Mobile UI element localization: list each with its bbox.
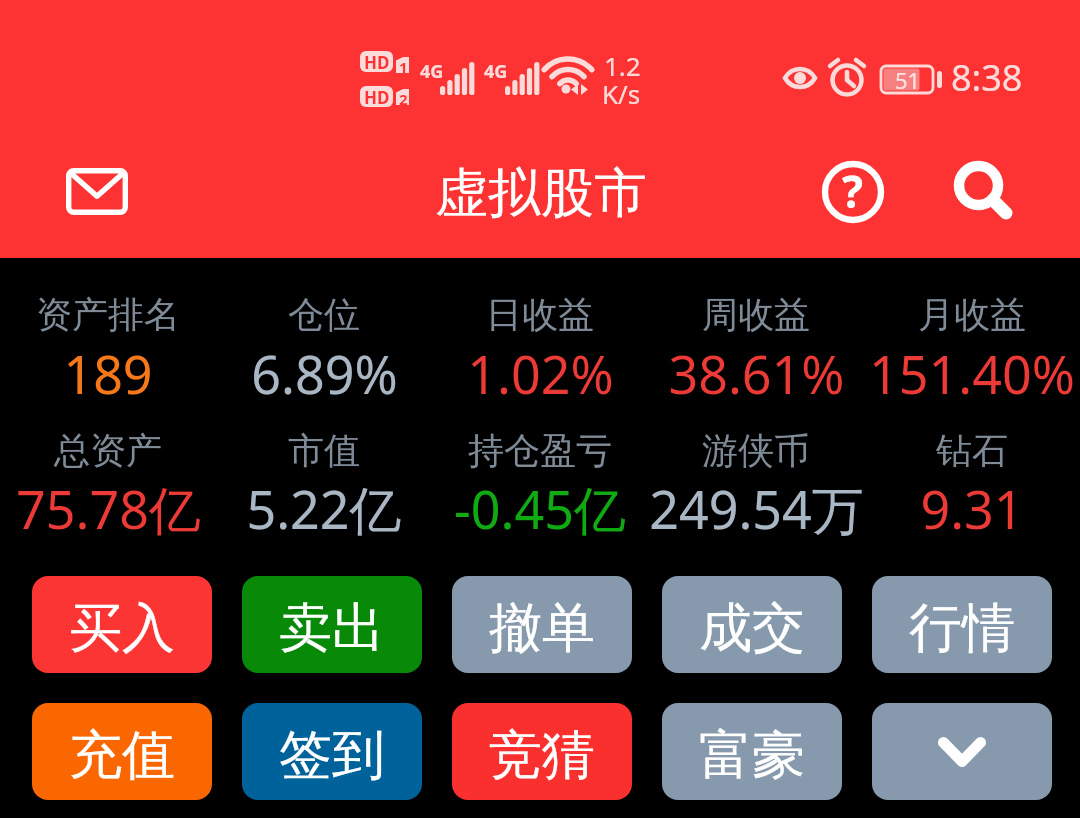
staticText: 资产排名	[36, 292, 180, 337]
button[interactable]: 市值	[216, 428, 432, 544]
staticText: 市值	[288, 428, 360, 473]
staticText: 8:38	[951, 53, 1023, 102]
button[interactable]: 撤单	[452, 576, 632, 673]
staticText: 虚拟股市	[435, 160, 647, 227]
staticText: 189	[63, 338, 153, 409]
button[interactable]: 充值	[32, 703, 212, 800]
staticText: 1	[399, 57, 408, 73]
button[interactable]: 富豪	[662, 703, 842, 800]
staticText: 游侠币	[702, 428, 810, 473]
staticText: 竞猜	[489, 722, 595, 789]
staticText: 仓位	[288, 292, 360, 337]
button[interactable]: 周收益	[648, 292, 864, 409]
staticText: 75.78亿	[16, 473, 201, 544]
button[interactable]: 游侠币	[648, 428, 864, 544]
button[interactable]: Messages	[36, 151, 158, 231]
button[interactable]: 钻石	[864, 428, 1080, 544]
staticText: 日收益	[486, 292, 594, 337]
button[interactable]: Search	[930, 134, 1022, 226]
staticText: 151.40%	[869, 338, 1075, 409]
staticText: 行情	[909, 595, 1015, 662]
staticText: HD	[364, 51, 390, 72]
staticText: 1.02%	[467, 338, 614, 409]
staticText: 249.54万	[649, 473, 864, 544]
staticText: 9.31	[920, 473, 1024, 544]
staticText: 4G	[484, 59, 508, 84]
button[interactable]: 仓位	[216, 292, 432, 409]
staticText: 6.89%	[251, 338, 398, 409]
button[interactable]: 签到	[242, 703, 422, 800]
staticText: 总资产	[54, 428, 162, 473]
staticText: 充值	[69, 722, 175, 789]
button[interactable]: 总资产	[0, 428, 216, 544]
staticText: 钻石	[936, 428, 1008, 473]
staticText: 周收益	[702, 292, 810, 337]
staticText: HD	[364, 86, 390, 107]
staticText: 5.22亿	[246, 473, 402, 544]
staticText: 持仓盈亏	[468, 428, 612, 473]
button[interactable]: 卖出	[242, 576, 422, 673]
staticText: 2	[399, 89, 408, 105]
staticText: 签到	[279, 722, 385, 789]
button[interactable]: 月收益	[864, 292, 1080, 409]
button[interactable]: 资产排名	[0, 292, 216, 409]
button[interactable]: 成交	[662, 576, 842, 673]
staticText: -0.45亿	[454, 473, 626, 544]
staticText: 成交	[699, 595, 805, 662]
staticText: K/s	[602, 76, 641, 111]
button[interactable]: 日收益	[432, 292, 648, 409]
staticText: 1.2	[604, 48, 641, 83]
button[interactable]: 竞猜	[452, 703, 632, 800]
button[interactable]: 行情	[872, 576, 1052, 673]
button[interactable]: Help	[809, 148, 896, 235]
staticText: 卖出	[279, 595, 385, 662]
staticText: 买入	[69, 595, 175, 662]
staticText: 51	[895, 65, 921, 94]
button[interactable]: 买入	[32, 576, 212, 673]
staticText: 月收益	[918, 292, 1026, 337]
staticText: 撤单	[489, 595, 595, 662]
staticText: 38.61%	[668, 338, 845, 409]
staticText: 富豪	[699, 722, 805, 789]
staticText: 4G	[420, 59, 444, 84]
button[interactable]: More	[872, 703, 1052, 800]
button[interactable]: 持仓盈亏	[432, 428, 648, 544]
staticText: ?	[842, 161, 863, 221]
